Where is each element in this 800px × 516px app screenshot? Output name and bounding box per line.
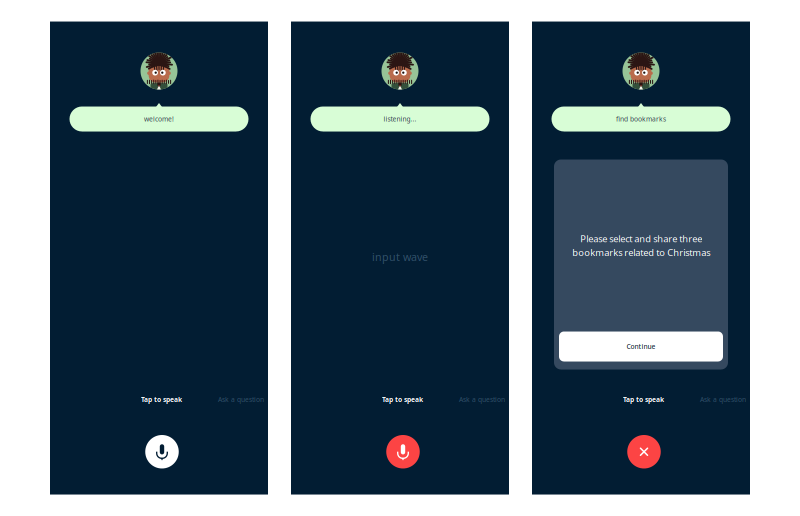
staticText: Ask a question <box>700 395 746 404</box>
button[interactable]: Cancel <box>627 435 661 468</box>
button[interactable]: Ask a question <box>459 395 505 404</box>
staticText: input wave <box>372 250 428 264</box>
button[interactable]: Ask a question <box>218 395 264 404</box>
staticText: listening... <box>383 115 416 123</box>
staticText: find bookmarks <box>616 115 666 123</box>
staticText: Tap to speak <box>623 395 664 404</box>
button[interactable]: Start recording <box>145 435 179 468</box>
staticText: welcome! <box>144 115 174 123</box>
staticText: Continue <box>626 342 655 351</box>
staticText: Ask a question <box>459 395 505 404</box>
button[interactable]: Tap to speak <box>623 395 664 404</box>
staticText: Tap to speak <box>382 395 423 404</box>
staticText: Tap to speak <box>141 395 182 404</box>
staticText: Please select and share three bookmarks … <box>572 232 710 258</box>
button[interactable]: Ask a question <box>700 395 746 404</box>
staticText: Ask a question <box>218 395 264 404</box>
button[interactable]: Tap to speak <box>382 395 423 404</box>
button[interactable]: Tap to speak <box>141 395 182 404</box>
button[interactable]: Continue <box>559 331 723 361</box>
button[interactable]: Start recording <box>386 435 420 468</box>
